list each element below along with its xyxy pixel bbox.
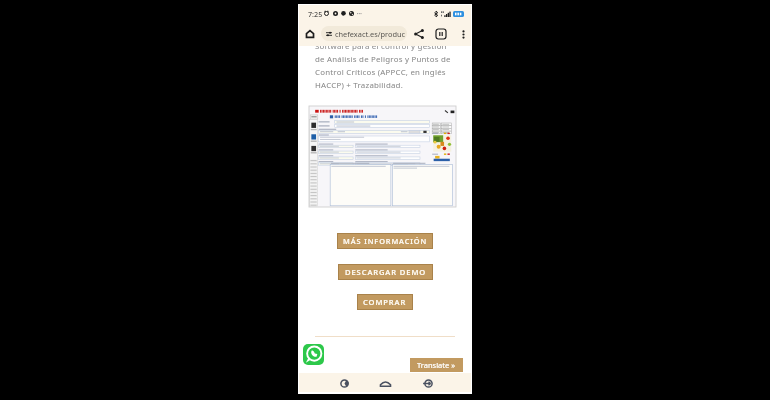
button[interactable]: More options bbox=[458, 29, 469, 40]
button[interactable]: Home bbox=[303, 27, 317, 41]
staticText: MÁS INFORMACIÓN bbox=[343, 236, 428, 246]
button[interactable]: DESCARGAR DEMO bbox=[339, 265, 432, 279]
button[interactable]: Translate » bbox=[410, 358, 463, 372]
button[interactable]: Back bbox=[418, 377, 438, 389]
button[interactable]: Home bbox=[375, 377, 395, 389]
button[interactable]: Share bbox=[412, 27, 425, 40]
staticText: Translate » bbox=[417, 360, 456, 370]
button[interactable]: COMPRAR bbox=[358, 295, 412, 309]
staticText: DESCARGAR DEMO bbox=[345, 267, 427, 277]
staticText: 7:25 bbox=[308, 9, 323, 19]
button[interactable]: Accessibility bbox=[334, 377, 354, 389]
button[interactable]: Tabs bbox=[434, 27, 447, 40]
button[interactable]: MÁS INFORMACIÓN bbox=[338, 234, 432, 248]
button[interactable]: WhatsApp bbox=[303, 344, 324, 365]
button[interactable]: chefexact.es/producto bbox=[321, 26, 407, 41]
staticText: chefexact.es/producto bbox=[335, 29, 405, 39]
staticText: Software para el control y gestión de An… bbox=[315, 41, 451, 90]
staticText: COMPRAR bbox=[363, 297, 407, 307]
